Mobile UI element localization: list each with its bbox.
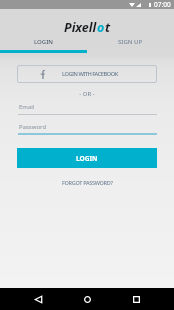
button[interactable]: FORGOT PASSWORD? — [62, 179, 113, 186]
button[interactable]: Recent apps — [112, 288, 161, 310]
staticText: Pixell — [64, 19, 97, 36]
button[interactable]: LOGIN — [17, 148, 157, 168]
staticText: LOGIN — [76, 154, 98, 163]
button[interactable]: LOGIN WITH FACEBOOK — [17, 65, 157, 83]
staticText: LOGIN — [34, 38, 53, 46]
staticText: 07:00 — [154, 0, 171, 9]
staticText: SIGN UP — [118, 38, 143, 46]
staticText: Password — [19, 123, 47, 131]
staticText: t — [105, 19, 111, 36]
button[interactable]: LOGIN — [0, 33, 87, 50]
button[interactable]: Home — [63, 288, 112, 310]
button[interactable]: Back — [14, 288, 63, 310]
staticText: o — [97, 19, 105, 36]
staticText: LOGIN WITH FACEBOOK — [62, 70, 118, 78]
button[interactable]: SIGN UP — [87, 33, 174, 50]
staticText: - OR - — [0, 90, 174, 98]
staticText: Email — [19, 103, 35, 111]
